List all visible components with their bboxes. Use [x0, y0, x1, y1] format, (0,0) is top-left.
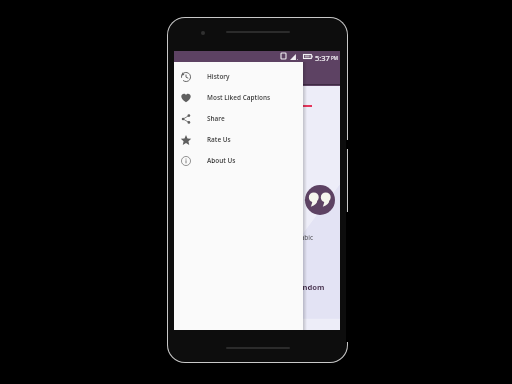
button[interactable]: History	[174, 66, 303, 87]
staticText: History	[207, 72, 230, 81]
staticText: Random	[293, 282, 325, 292]
staticText: 5:37	[315, 53, 330, 63]
button[interactable]: Share	[174, 108, 303, 129]
staticText: Most Liked Captions	[207, 93, 271, 102]
staticText: About Us	[207, 156, 236, 165]
button[interactable]: Most Liked Captions	[174, 87, 303, 108]
button[interactable]: About Us	[174, 150, 303, 171]
staticText: Share	[207, 114, 225, 123]
button[interactable]	[174, 62, 340, 86]
staticText: Rate Us	[207, 135, 231, 144]
staticText: Arabic	[294, 233, 314, 242]
staticText: PM	[331, 55, 338, 61]
button[interactable]: Rate Us	[174, 129, 303, 150]
